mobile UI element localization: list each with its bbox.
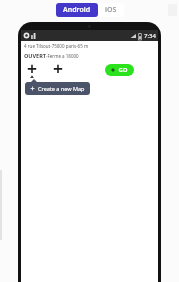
staticText: Create a new Map (38, 85, 85, 92)
staticText: 4 rue Tilsout-75000 paris-65 m (24, 43, 89, 49)
staticText: iOS (105, 5, 117, 15)
button[interactable]: Add (51, 63, 65, 77)
staticText: 7:34 (144, 32, 156, 40)
staticText: OUVERT (24, 52, 46, 59)
button[interactable]: Android (56, 3, 98, 17)
staticText: GO (118, 66, 128, 74)
button[interactable]: Create a new Map (25, 82, 90, 95)
button[interactable]: iOS (98, 3, 124, 17)
staticText: Android (63, 5, 91, 15)
button[interactable]: Add place (25, 63, 39, 77)
button[interactable]: GO (105, 64, 134, 76)
staticText: -Ferme a 18000 (46, 53, 79, 59)
